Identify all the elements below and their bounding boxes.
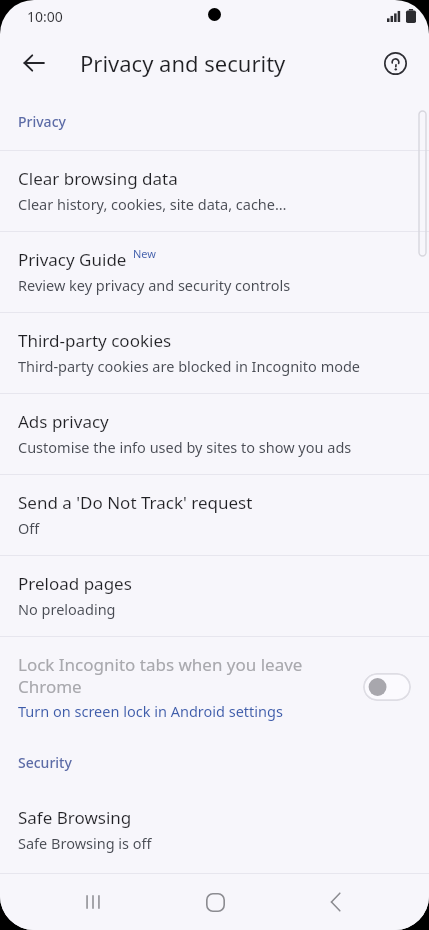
button[interactable]: Safe Browsing xyxy=(0,790,429,870)
button[interactable]: Home xyxy=(187,874,243,930)
staticText: Review key privacy and security controls xyxy=(18,275,291,295)
staticText: Safe Browsing xyxy=(18,806,132,829)
button[interactable]: Send a 'Do Not Track' request xyxy=(0,475,429,555)
staticText: Preload pages xyxy=(18,572,132,595)
button[interactable]: Back xyxy=(10,39,58,87)
button[interactable]: Privacy Guide xyxy=(0,232,429,312)
staticText: Customise the info used by sites to show… xyxy=(18,437,352,457)
staticText: Off xyxy=(18,518,40,538)
staticText: Privacy xyxy=(18,112,66,131)
staticText: Clear history, cookies, site data, cache… xyxy=(18,194,287,214)
button[interactable]: Help xyxy=(373,41,417,85)
button[interactable]: Third-party cookies xyxy=(0,313,429,393)
button[interactable]: Clear browsing data xyxy=(0,151,429,231)
staticText: Turn on screen lock in Android settings xyxy=(18,701,283,721)
staticText: Privacy Guide xyxy=(18,248,127,271)
staticText: Lock Incognito tabs when you leave Chrom… xyxy=(18,653,349,698)
button[interactable]: Preload pages xyxy=(0,556,429,636)
staticText: New xyxy=(133,246,156,261)
staticText: Privacy and security xyxy=(80,48,286,78)
staticText: Clear browsing data xyxy=(18,167,178,190)
button[interactable]: Lock Incognito tabs toggle xyxy=(363,673,411,701)
button[interactable]: Back xyxy=(308,874,364,930)
staticText: Third-party cookies are blocked in Incog… xyxy=(18,356,361,376)
button[interactable]: Ads privacy xyxy=(0,394,429,474)
staticText: Send a 'Do Not Track' request xyxy=(18,491,253,514)
staticText: No preloading xyxy=(18,599,116,619)
staticText: Safe Browsing is off xyxy=(18,833,152,853)
staticText: Security xyxy=(18,753,72,772)
staticText: Ads privacy xyxy=(18,410,109,433)
staticText: Third-party cookies xyxy=(18,329,172,352)
button[interactable]: Recent apps xyxy=(65,874,121,930)
button[interactable]: Lock Incognito tabs when you leave Chrom… xyxy=(0,637,429,737)
staticText: 10:00 xyxy=(27,7,63,26)
